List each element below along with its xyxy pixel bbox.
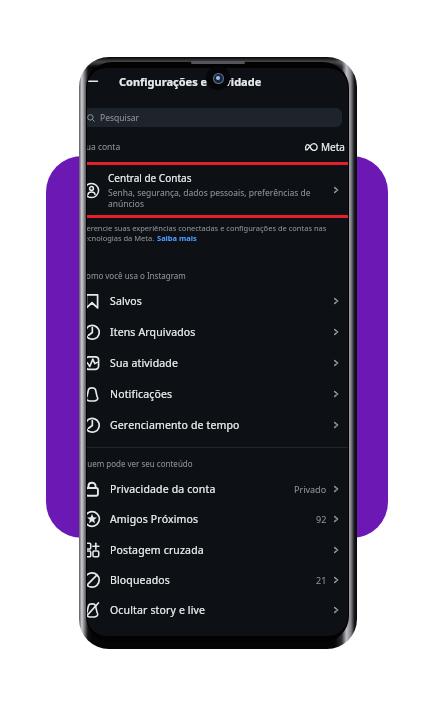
staticText: Salvos: [110, 294, 142, 308]
staticText: Ocultar story e live: [110, 603, 206, 617]
button[interactable]: Voltar: [87, 73, 101, 89]
staticText: Privacidade da conta: [110, 482, 216, 496]
button[interactable]: Bloqueados: [87, 565, 348, 594]
staticText: Gerencie suas experiências conectadas e …: [87, 223, 327, 233]
staticText: Pesquisar: [100, 112, 140, 124]
button[interactable]: Privacidade da conta: [87, 473, 348, 504]
staticText: Notificações: [110, 387, 173, 401]
button[interactable]: Pesquisar: [87, 108, 342, 127]
staticText: Quem pode ver seu conteúdo: [87, 458, 193, 469]
button[interactable]: Notificações: [87, 378, 348, 409]
staticText: Sua conta: [87, 141, 121, 153]
button[interactable]: Amigos Próximos: [87, 504, 348, 534]
staticText: Itens Arquivados: [110, 325, 196, 339]
staticText: Como você usa o Instagram: [87, 270, 186, 281]
staticText: Amigos Próximos: [110, 512, 199, 526]
staticText: Bloqueados: [110, 573, 170, 587]
staticText: Senha, segurança, dados pessoais, prefer…: [108, 187, 327, 209]
button[interactable]: Central de Contas: [87, 165, 348, 215]
button[interactable]: Salvos: [87, 285, 348, 316]
staticText: Privado: [294, 483, 327, 495]
button[interactable]: Postagem cruzada: [87, 534, 348, 565]
staticText: Meta: [321, 140, 345, 154]
staticText: 92: [316, 513, 327, 525]
staticText: Gerenciamento de tempo: [110, 418, 240, 432]
staticText: Postagem cruzada: [110, 543, 204, 557]
button[interactable]: Itens Arquivados: [87, 316, 348, 347]
staticText: 21: [316, 574, 327, 586]
staticText: Sua atividade: [110, 356, 178, 370]
button[interactable]: Gerenciamento de tempo: [87, 409, 348, 440]
button[interactable]: Saiba mais: [157, 233, 197, 243]
button[interactable]: Sua atividade: [87, 347, 348, 378]
button[interactable]: Ocultar story e live: [87, 594, 348, 625]
staticText: Configurações e atividade: [119, 74, 262, 89]
staticText: Central de Contas: [108, 171, 192, 185]
staticText: tecnologias da Meta.: [87, 233, 157, 243]
